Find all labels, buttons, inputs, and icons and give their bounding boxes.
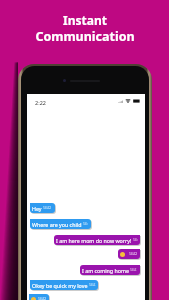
button[interactable]: Okey be quick my love bbox=[30, 280, 98, 290]
staticText: I am here mom do now worry! bbox=[56, 237, 132, 244]
staticText: 2:22 bbox=[35, 99, 46, 106]
staticText: Okey be quick my love bbox=[32, 282, 88, 289]
button[interactable]: Emoji message bbox=[118, 249, 140, 259]
button[interactable]: I am coming home bbox=[80, 265, 140, 275]
staticText: Where are you child bbox=[32, 221, 82, 228]
button[interactable]: I am here mom do now worry! bbox=[54, 235, 140, 245]
button[interactable]: Emoji message bbox=[29, 294, 49, 300]
staticText: 14:22 bbox=[43, 206, 52, 210]
staticText: Hey bbox=[32, 205, 42, 212]
staticText: Instant bbox=[63, 12, 107, 28]
staticText: 14:22 bbox=[130, 268, 138, 272]
staticText: 14:22 bbox=[38, 297, 47, 300]
staticText: Communication bbox=[35, 28, 135, 45]
button[interactable]: Where are you child bbox=[30, 219, 91, 229]
button[interactable]: Hey bbox=[30, 203, 55, 213]
staticText: 14:22 bbox=[133, 238, 138, 242]
staticText: 14:22 bbox=[83, 222, 89, 226]
staticText: 14:22 bbox=[129, 252, 138, 256]
staticText: 14:22 bbox=[89, 283, 96, 287]
staticText: I am coming home bbox=[82, 267, 129, 274]
